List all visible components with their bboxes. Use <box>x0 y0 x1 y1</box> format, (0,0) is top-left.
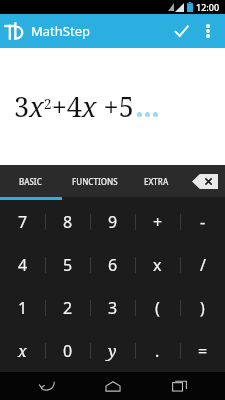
staticText: 12:00 <box>196 1 220 13</box>
staticText: BASIC <box>19 176 42 187</box>
staticText: ) <box>200 297 205 319</box>
button[interactable]: Done <box>166 16 196 46</box>
button[interactable]: 8 <box>45 200 90 243</box>
staticText: ( <box>155 297 160 319</box>
staticText: 9 <box>108 211 118 233</box>
staticText: 2 <box>63 297 73 319</box>
button[interactable]: x <box>0 329 45 372</box>
staticText: + <box>153 211 163 233</box>
button[interactable]: Back <box>30 372 64 400</box>
button[interactable]: BASIC <box>0 165 61 197</box>
staticText: x <box>18 340 27 362</box>
button[interactable]: Backspace <box>184 165 225 197</box>
staticText: 3x2+4x +5 <box>14 88 134 125</box>
button[interactable]: 0 <box>45 329 90 372</box>
button[interactable]: 9 <box>90 200 135 243</box>
button[interactable]: EXTRA <box>129 165 184 197</box>
staticText: 1 <box>18 297 28 319</box>
staticText: . <box>155 340 160 362</box>
staticText: FUNCTIONS <box>72 176 118 187</box>
button[interactable]: Home <box>96 372 130 400</box>
button[interactable]: x <box>135 243 180 286</box>
button[interactable]: y <box>90 329 135 372</box>
button[interactable]: 2 <box>45 286 90 329</box>
button[interactable]: - <box>180 200 225 243</box>
button[interactable]: + <box>135 200 180 243</box>
staticText: 6 <box>108 254 118 276</box>
staticText: / <box>200 254 206 276</box>
staticText: 7 <box>18 211 28 233</box>
button[interactable]: ) <box>180 286 225 329</box>
button[interactable]: ( <box>135 286 180 329</box>
button[interactable]: 7 <box>0 200 45 243</box>
button[interactable]: 1 <box>0 286 45 329</box>
button[interactable]: FUNCTIONS <box>61 165 129 197</box>
staticText: y <box>108 340 117 362</box>
staticText: = <box>198 340 208 362</box>
staticText: - <box>200 211 206 233</box>
staticText: x <box>153 254 162 276</box>
button[interactable]: 3x2+4x +5 <box>0 48 225 165</box>
button[interactable]: 4 <box>0 243 45 286</box>
staticText: 3 <box>108 297 118 319</box>
staticText: 5 <box>63 254 73 276</box>
button[interactable]: 6 <box>90 243 135 286</box>
staticText: EXTRA <box>144 176 169 187</box>
staticText: 4 <box>18 254 28 276</box>
button[interactable]: 5 <box>45 243 90 286</box>
staticText: 8 <box>63 211 73 233</box>
button[interactable]: = <box>180 329 225 372</box>
button[interactable]: / <box>180 243 225 286</box>
staticText: 0 <box>63 340 73 362</box>
button[interactable]: . <box>135 329 180 372</box>
button[interactable]: 3 <box>90 286 135 329</box>
staticText: MathStep <box>31 22 90 40</box>
button[interactable]: More options <box>196 19 220 43</box>
button[interactable]: Recent apps <box>162 372 196 400</box>
